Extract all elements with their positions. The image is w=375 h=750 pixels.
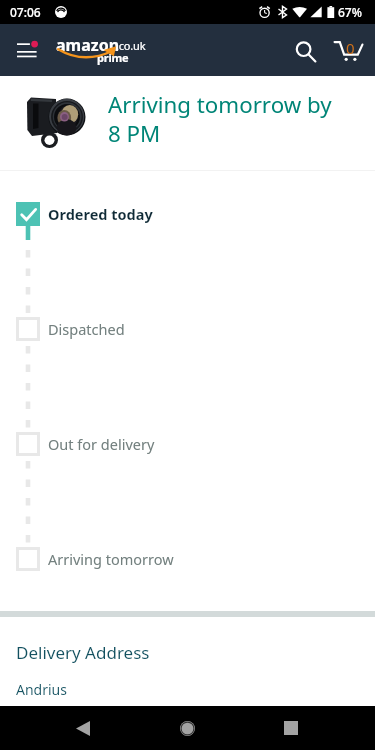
button[interactable]: Dispatched xyxy=(0,307,375,351)
staticText: .co.uk xyxy=(116,38,146,53)
button[interactable]: Out for delivery xyxy=(0,422,375,466)
button[interactable]: Ordered today xyxy=(0,192,375,236)
button[interactable]: Back xyxy=(0,706,125,750)
staticText: amazon xyxy=(56,34,120,56)
button[interactable]: Arriving tomorrow xyxy=(0,537,375,581)
button[interactable]: Recents xyxy=(250,706,375,750)
staticText: Delivery Address xyxy=(16,641,150,664)
staticText: Out for delivery xyxy=(48,434,155,454)
staticText: 0 xyxy=(346,38,355,58)
staticText: prime xyxy=(97,50,129,65)
button[interactable]: Search xyxy=(282,28,330,76)
staticText: Arriving tomorrow by 8 PM xyxy=(108,89,344,149)
staticText: Dispatched xyxy=(48,319,125,339)
staticText: Arriving tomorrow xyxy=(48,549,174,569)
staticText: 07:06 xyxy=(10,4,41,20)
staticText: 67% xyxy=(338,4,362,20)
button[interactable]: Cart xyxy=(324,26,372,74)
button[interactable]: Menu xyxy=(0,24,52,76)
staticText: Ordered today xyxy=(48,204,153,224)
button[interactable]: Home xyxy=(125,706,250,750)
staticText: Andrius xyxy=(16,680,67,699)
